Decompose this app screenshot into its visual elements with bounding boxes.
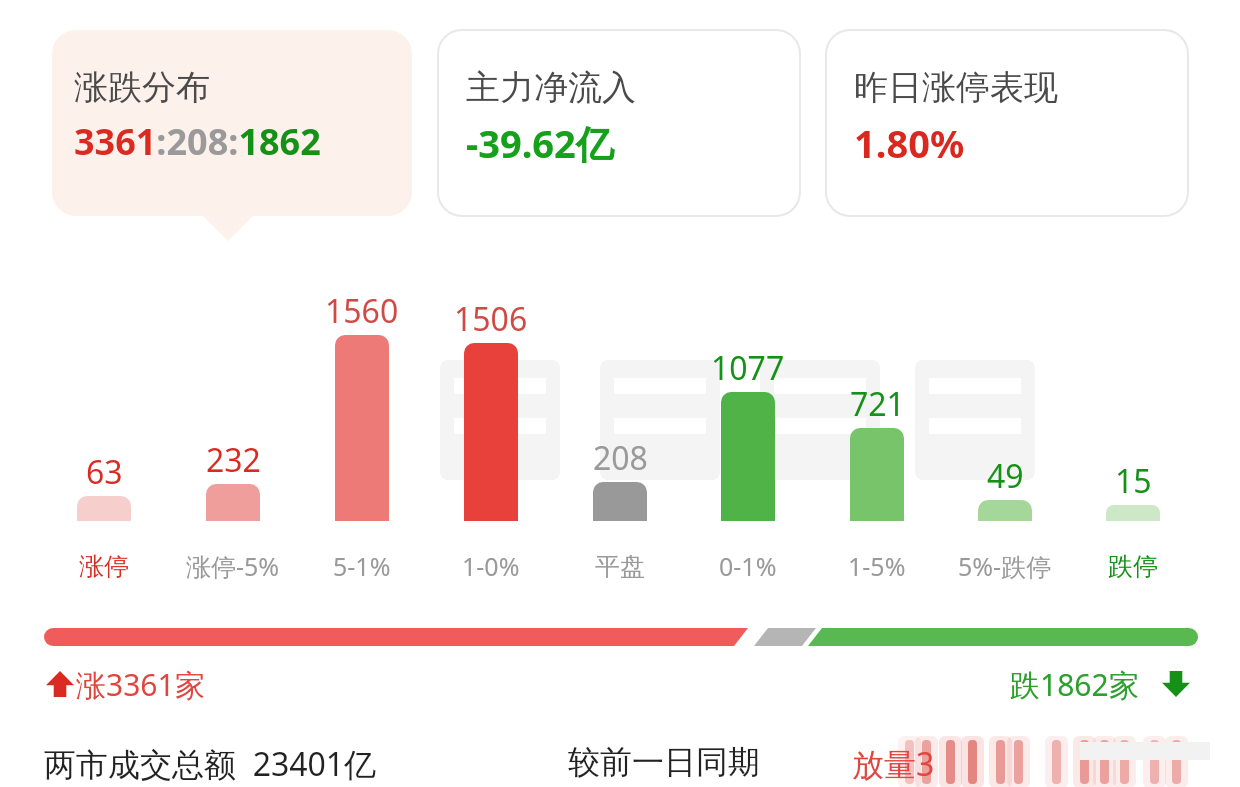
staticText: 1077 xyxy=(711,346,785,388)
staticText: 跌停 xyxy=(1108,551,1158,582)
button[interactable]: 5-1% xyxy=(292,548,432,584)
button[interactable]: 平盘 xyxy=(550,548,690,584)
staticText: 0-1% xyxy=(719,549,777,583)
staticText: 49 xyxy=(987,454,1024,496)
staticText: 较前一日同期 xyxy=(568,742,760,782)
staticText: 昨日涨停表现 xyxy=(854,66,1058,109)
button[interactable]: 主力净流入 xyxy=(438,30,800,216)
staticText: 1.80% xyxy=(854,117,965,169)
staticText: 1506 xyxy=(454,297,528,339)
staticText: 5-1% xyxy=(333,549,391,583)
button[interactable]: 涨3361家 xyxy=(76,664,205,705)
staticText: 跌1862家 xyxy=(1010,664,1139,705)
button[interactable]: 跌停 xyxy=(1063,548,1203,584)
staticText: 涨停-5% xyxy=(186,549,280,583)
staticText: 15 xyxy=(1115,459,1152,501)
button[interactable]: 昨日涨停表现 xyxy=(826,30,1188,216)
staticText: 721 xyxy=(850,382,905,424)
staticText: 涨停 xyxy=(79,551,129,582)
button[interactable]: 涨跌分布 xyxy=(52,30,412,216)
staticText: 208 xyxy=(593,436,648,478)
staticText: 1560 xyxy=(325,289,399,331)
button[interactable]: 1-5% xyxy=(807,548,947,584)
staticText: 1-0% xyxy=(462,549,520,583)
staticText: -39.62亿 xyxy=(466,117,614,169)
staticText: 1-5% xyxy=(848,549,906,583)
staticText: 5%-跌停 xyxy=(958,549,1052,583)
staticText: 涨3361家 xyxy=(76,664,205,705)
staticText: 232 xyxy=(206,438,261,480)
staticText: 放量3 xyxy=(852,742,935,786)
staticText: 3361:208:1862 xyxy=(74,117,321,166)
button[interactable]: 5%-跌停 xyxy=(935,548,1075,584)
staticText: 平盘 xyxy=(595,551,645,582)
button[interactable]: 涨停-5% xyxy=(163,548,303,584)
button[interactable]: 跌1862家 xyxy=(1010,664,1139,705)
staticText: 63 xyxy=(86,450,123,492)
staticText: 两市成交总额 23401亿 xyxy=(44,742,377,786)
button[interactable]: 0-1% xyxy=(678,548,818,584)
button[interactable]: 1-0% xyxy=(421,548,561,584)
staticText: 主力净流入 xyxy=(466,66,636,109)
button[interactable]: 涨停 xyxy=(34,548,174,584)
staticText: 涨跌分布 xyxy=(74,66,210,109)
